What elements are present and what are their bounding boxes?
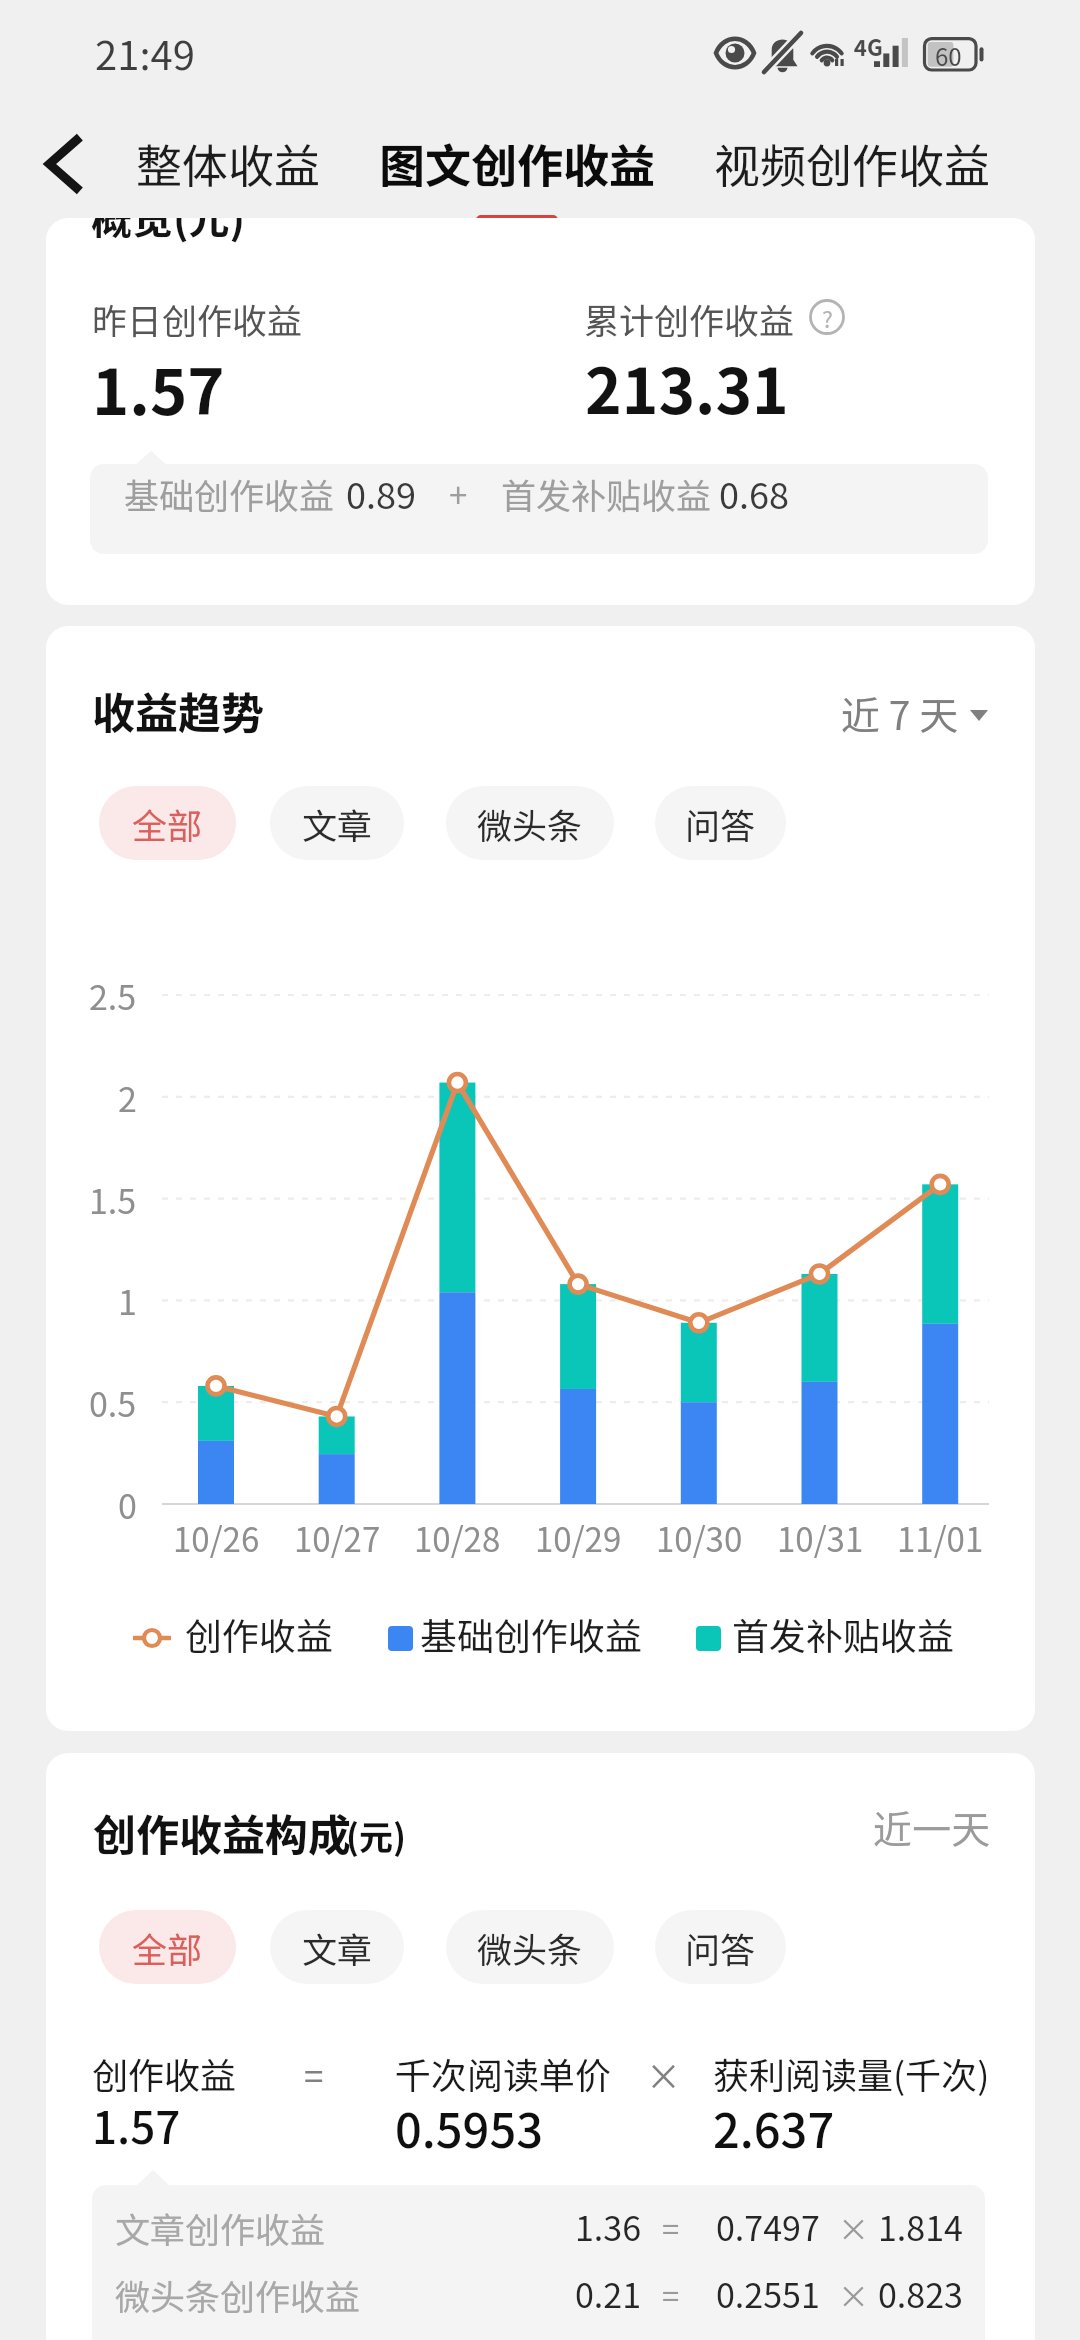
staticText: 0.2551	[716, 2269, 820, 2318]
staticText: 10/26	[173, 1514, 260, 1562]
staticText: 创作收益	[185, 1607, 333, 1661]
staticText: 10/30	[656, 1514, 743, 1562]
staticText: 微头条创作收益	[115, 2269, 361, 2320]
staticText: 0.5953	[395, 2093, 543, 2161]
button[interactable]: Info	[809, 299, 845, 335]
staticText: 2	[118, 1073, 137, 1122]
staticText: 213.31	[585, 342, 789, 432]
staticText: 全部	[132, 798, 203, 849]
staticText: 创作收益	[92, 2047, 237, 2099]
staticText: 60	[935, 38, 962, 73]
staticText: ×	[646, 2049, 682, 2100]
staticText: 21:49	[95, 24, 195, 82]
button[interactable]: 问答	[655, 786, 786, 860]
staticText: 全部	[132, 1922, 203, 1973]
staticText: 0.68	[719, 467, 789, 519]
button[interactable]: 文章	[270, 786, 404, 860]
staticText: 问答	[685, 798, 756, 849]
staticText: 图文创作收益	[379, 130, 655, 197]
staticText: 10/27	[294, 1514, 381, 1562]
staticText: 文章	[302, 1922, 373, 1973]
staticText: =	[662, 2272, 680, 2317]
staticText: ×	[838, 2205, 869, 2250]
staticText: 11/01	[897, 1514, 984, 1562]
staticText: 基础创作收益	[420, 1607, 642, 1661]
button[interactable]: 近 7 天	[816, 662, 996, 742]
button[interactable]: 整体收益	[135, 0, 320, 218]
staticText: 概览(元)	[91, 218, 246, 245]
staticText: 10/28	[414, 1514, 501, 1562]
staticText: 文章	[302, 798, 373, 849]
button[interactable]: 全部	[99, 1910, 236, 1984]
staticText: 近一天	[873, 1799, 991, 1855]
button[interactable]: 图文创作收益	[377, 0, 657, 218]
staticText: 10/31	[777, 1514, 864, 1562]
staticText: 4G	[854, 30, 883, 62]
staticText: 0.7497	[716, 2202, 820, 2251]
button[interactable]: 近一天	[766, 1789, 991, 1867]
staticText: 收益趋势	[92, 679, 264, 741]
staticText: 创作收益构成	[93, 1801, 351, 1863]
staticText: 整体收益	[136, 130, 320, 197]
staticText: 千次阅读单价	[395, 2047, 612, 2099]
staticText: 文章创作收益	[115, 2202, 326, 2253]
staticText: ?	[822, 301, 833, 334]
staticText: 0	[118, 1480, 137, 1529]
staticText: 1.57	[92, 342, 225, 433]
button[interactable]: Back	[20, 120, 108, 208]
staticText: 10/29	[535, 1514, 622, 1562]
staticText: 首发补贴收益	[501, 468, 712, 519]
staticText: 0.823	[878, 2269, 962, 2318]
button[interactable]: 微头条	[446, 1910, 614, 1984]
staticText: 2.637	[713, 2093, 835, 2161]
staticText: 1.57	[92, 2093, 181, 2157]
staticText: =	[662, 2205, 680, 2250]
staticText: 首发补贴收益	[732, 1607, 954, 1661]
staticText: 1.36	[575, 2202, 642, 2251]
staticText: 问答	[685, 1922, 756, 1973]
staticText: 获利阅读量(千次)	[713, 2047, 990, 2099]
staticText: 0.21	[575, 2269, 642, 2318]
button[interactable]: 视频创作收益	[713, 0, 990, 218]
staticText: 0.5	[89, 1378, 137, 1427]
staticText: 累计创作收益	[584, 293, 795, 344]
staticText: 1.5	[89, 1175, 137, 1224]
staticText: 0.89	[346, 467, 416, 519]
button[interactable]: 文章	[270, 1910, 404, 1984]
staticText: 近 7 天	[841, 685, 959, 741]
staticText: 基础创作收益	[124, 468, 335, 519]
staticText: 1.814	[878, 2202, 962, 2251]
staticText: 微头条	[477, 1922, 583, 1973]
staticText: ×	[838, 2272, 869, 2317]
staticText: 1	[118, 1276, 137, 1325]
staticText: (元)	[346, 1811, 406, 1860]
button[interactable]: 全部	[99, 786, 236, 860]
button[interactable]: 微头条	[446, 786, 614, 860]
staticText: 微头条	[477, 798, 583, 849]
staticText: 2.5	[89, 971, 137, 1020]
staticText: +	[449, 470, 468, 518]
staticText: =	[304, 2049, 324, 2100]
button[interactable]: 问答	[655, 1910, 786, 1984]
staticText: 视频创作收益	[714, 130, 990, 197]
staticText: 昨日创作收益	[92, 293, 303, 344]
